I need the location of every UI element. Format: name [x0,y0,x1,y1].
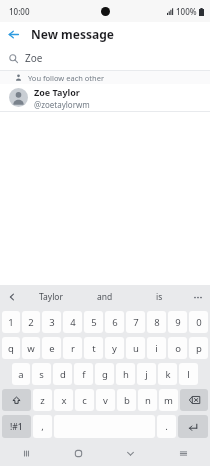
button[interactable]: a [12,363,30,385]
staticText: h [123,368,129,381]
button[interactable]: y [105,337,124,359]
button[interactable]: is [132,285,186,309]
staticText: 100% [176,6,197,17]
staticText: c [82,394,87,407]
button[interactable]: 3 [42,311,61,333]
staticText: 0 [196,316,202,329]
button[interactable]: w [22,337,40,359]
staticText: j [145,368,148,381]
staticText: n [145,394,151,407]
button[interactable]: 1 [2,311,20,333]
button[interactable]: and [78,285,132,309]
staticText: Zoe Taylor [34,86,80,98]
staticText: m [164,394,173,407]
button[interactable]: p [189,337,208,359]
staticText: l [187,368,190,381]
staticText: 4 [70,316,76,329]
staticText: 10:00 [9,6,30,17]
button[interactable]: g [95,363,114,385]
button[interactable]: t [84,337,103,359]
staticText: t [92,342,96,355]
button[interactable]: x [54,389,73,411]
button[interactable]: . [157,415,176,438]
button[interactable]: Previous suggestions [0,285,24,309]
button[interactable]: 4 [63,311,82,333]
staticText: 3 [49,316,55,329]
staticText: z [40,394,45,407]
button[interactable]: e [42,337,61,359]
staticText: !#1 [10,421,23,433]
staticText: 8 [154,316,160,329]
button[interactable]: 0 [189,311,208,333]
staticText: @zoetaylorwm [34,99,90,110]
staticText: a [18,368,24,381]
button[interactable]: n [138,389,157,411]
staticText: y [112,342,117,355]
button[interactable]: 5 [84,311,103,333]
staticText: 6 [112,316,118,329]
staticText: You follow each other [28,73,105,83]
button[interactable]: z [33,389,52,411]
staticText: New message [31,26,114,42]
button[interactable]: Backspace [180,389,208,411]
button[interactable]: s [32,363,51,385]
staticText: 2 [28,316,34,329]
button[interactable]: 9 [168,311,187,333]
staticText: Taylor [39,291,63,303]
button[interactable]: 2 [22,311,40,333]
button[interactable]: f [74,363,93,385]
staticText: 1 [8,316,14,329]
button[interactable]: Zoe Taylor [0,84,210,111]
button[interactable]: Symbols [2,415,31,438]
button[interactable]: 8 [147,311,166,333]
staticText: 5 [91,316,97,329]
button[interactable]: m [159,389,178,411]
staticText: x [61,394,67,407]
staticText: q [8,342,14,355]
button[interactable]: Back [0,22,26,46]
button[interactable]: h [116,363,135,385]
button[interactable]: c [75,389,94,411]
staticText: k [165,368,171,381]
staticText: d [60,368,66,381]
staticText: b [124,394,130,407]
button[interactable]: Recents [0,441,52,466]
button[interactable]: j [137,363,156,385]
staticText: w [27,342,35,355]
staticText: e [49,342,55,355]
button[interactable]: u [126,337,145,359]
staticText: g [102,368,108,381]
button[interactable]: Hide keyboard [104,441,157,466]
button[interactable]: Keyboard layout [157,441,210,466]
staticText: and [97,291,113,303]
button[interactable]: r [63,337,82,359]
button[interactable]: d [53,363,72,385]
button[interactable]: Home [52,441,104,466]
staticText: i [155,342,158,355]
button[interactable]: Enter [178,415,208,438]
staticText: . [165,420,168,433]
button[interactable]: Zoe [0,46,210,70]
button[interactable]: i [147,337,166,359]
button[interactable]: v [96,389,115,411]
button[interactable]: 7 [126,311,145,333]
staticText: u [133,342,139,355]
button[interactable]: Taylor [24,285,78,309]
button[interactable]: k [158,363,177,385]
button[interactable]: , [33,415,52,438]
staticText: f [82,368,86,381]
button[interactable]: More options [186,285,210,309]
button[interactable]: q [2,337,20,359]
staticText: is [156,291,163,303]
staticText: p [196,342,202,355]
button[interactable]: 6 [105,311,124,333]
button[interactable]: o [168,337,187,359]
button[interactable]: b [117,389,136,411]
staticText: , [41,420,44,433]
button[interactable]: Shift [2,389,31,411]
button[interactable]: l [179,363,198,385]
staticText: o [175,342,181,355]
staticText: r [71,342,75,355]
staticText: Zoe [25,51,43,65]
